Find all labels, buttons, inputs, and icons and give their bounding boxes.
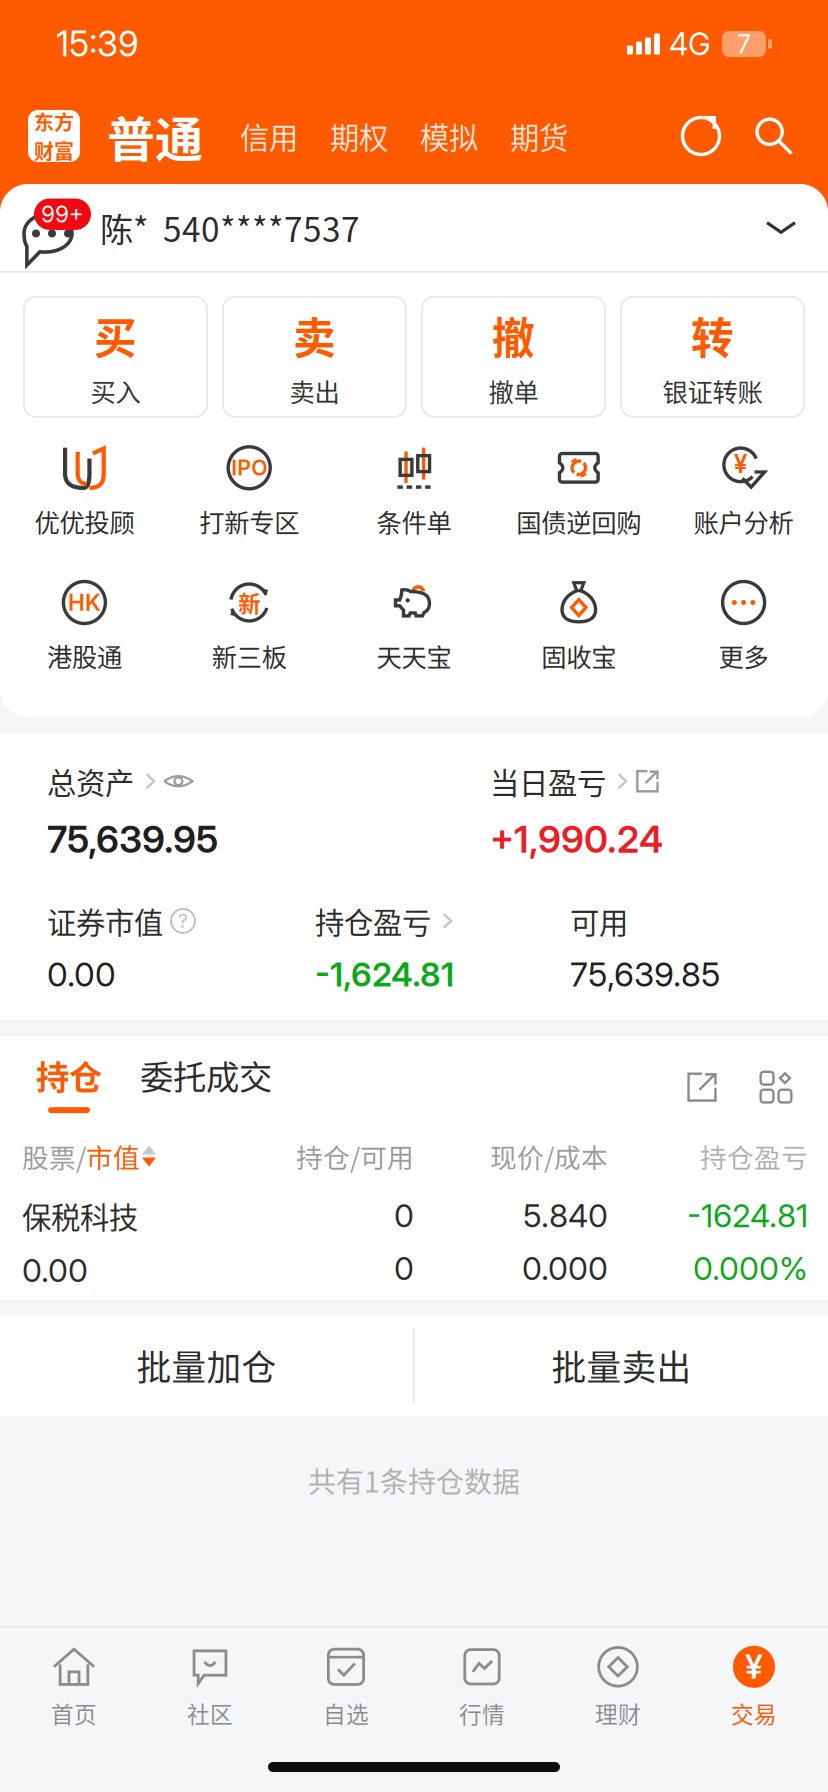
button[interactable]: HK [2, 581, 167, 674]
staticText: 0.00 [47, 954, 116, 994]
staticText: 15:39 [56, 23, 139, 65]
staticText: 共有1条持仓数据 [308, 1460, 520, 1500]
staticText: 转 [691, 305, 734, 366]
staticText: 交易 [731, 1697, 777, 1730]
staticText: 5.840 [523, 1196, 608, 1235]
staticText: 持仓 [36, 1051, 102, 1099]
button[interactable]: 条件单 [332, 447, 496, 539]
button[interactable]: 卖 [223, 297, 406, 417]
staticText: 75,639.95 [47, 816, 218, 862]
button[interactable]: 批量加仓 [0, 1315, 413, 1416]
staticText: 优优投顾 [34, 503, 134, 539]
staticText: 普通 [107, 101, 203, 171]
button[interactable]: 撤 [422, 297, 605, 417]
staticText: 财富 [34, 136, 74, 165]
button[interactable]: ¥ [661, 447, 826, 539]
staticText: 批量卖出 [551, 1340, 691, 1391]
staticText: 港股通 [47, 637, 122, 674]
staticText: IPO [231, 455, 267, 481]
staticText: 撤单 [488, 372, 538, 409]
button[interactable]: 模拟 [404, 106, 494, 166]
staticText: 天天宝 [376, 637, 451, 674]
staticText: 持仓盈亏 [700, 1137, 808, 1175]
button[interactable]: 首页 [6, 1646, 142, 1730]
staticText: 持仓盈亏 [315, 900, 431, 942]
staticText: 撤 [492, 305, 535, 366]
staticText: 国债逆回购 [516, 503, 641, 539]
staticText: 可用 [570, 900, 628, 942]
staticText: 陈* 540****7537 [100, 203, 360, 252]
staticText: 信用 [240, 115, 298, 157]
button[interactable]: 国债逆回购 [496, 447, 661, 539]
button[interactable]: ¥ [686, 1646, 822, 1730]
staticText: 打新专区 [199, 503, 299, 539]
button[interactable]: 新 [167, 581, 332, 674]
staticText: 首页 [51, 1697, 97, 1730]
button[interactable]: 社区 [142, 1646, 278, 1730]
staticText: 社区 [187, 1697, 233, 1730]
staticText: 0 [394, 1249, 414, 1288]
staticText: 75,639.85 [570, 954, 720, 994]
staticText: 当日盈亏 [490, 760, 606, 802]
button[interactable]: 委托成交 [102, 1051, 272, 1113]
button[interactable]: Search [722, 115, 794, 157]
button[interactable]: 99+ [0, 184, 828, 271]
staticText: 新 [238, 586, 260, 619]
staticText: 0.000 [522, 1249, 608, 1288]
button[interactable]: 转 [621, 297, 804, 417]
staticText: 买 [94, 305, 137, 366]
button[interactable]: 更多 [661, 581, 826, 674]
button[interactable]: 保税科技 [0, 1184, 828, 1300]
staticText: 条件单 [376, 503, 451, 539]
button[interactable]: 自选 [278, 1646, 414, 1730]
button[interactable]: Layout [718, 1071, 792, 1113]
staticText: ¥ [745, 1647, 763, 1686]
staticText: 持仓/可用 [296, 1137, 414, 1175]
staticText: 保税科技 [22, 1194, 138, 1237]
button[interactable]: 批量卖出 [415, 1315, 828, 1416]
button[interactable]: 行情 [414, 1646, 550, 1730]
staticText: ¥ [734, 449, 748, 479]
button[interactable]: IPO [167, 447, 332, 539]
button[interactable]: 优优投顾 [2, 447, 167, 539]
staticText: 卖 [293, 305, 336, 366]
staticText: 4G [669, 25, 711, 62]
staticText: 固收宝 [541, 637, 616, 674]
staticText: 市值 [86, 1137, 140, 1175]
staticText: 99+ [41, 200, 84, 228]
staticText: 证券市值 [47, 900, 163, 942]
staticText: HK [68, 589, 101, 616]
staticText: 现价/成本 [490, 1137, 608, 1175]
staticText: 0.00 [22, 1251, 88, 1290]
button[interactable]: 理财 [550, 1646, 686, 1730]
staticText: -1624.81 [687, 1196, 808, 1235]
staticText: ? [178, 909, 188, 932]
staticText: 理财 [595, 1697, 641, 1730]
button[interactable]: Export [686, 1071, 718, 1113]
staticText: 银证转账 [662, 372, 762, 409]
staticText: 委托成交 [140, 1051, 272, 1099]
button[interactable]: 期货 [494, 106, 584, 166]
button[interactable]: 持仓 [36, 1051, 102, 1113]
staticText: 更多 [719, 637, 769, 674]
staticText: 自选 [323, 1697, 369, 1730]
staticText: 7 [737, 29, 751, 59]
staticText: 卖出 [289, 372, 339, 409]
staticText: 期权 [330, 115, 388, 157]
staticText: -1,624.81 [315, 954, 454, 994]
button[interactable]: Refresh [680, 115, 722, 157]
staticText: 期货 [510, 115, 568, 157]
staticText: 买入 [90, 372, 140, 409]
staticText: 东方 [34, 107, 74, 136]
button[interactable]: 期权 [314, 106, 404, 166]
button[interactable]: 固收宝 [496, 581, 661, 674]
button[interactable]: 信用 [224, 106, 314, 166]
staticText: 行情 [459, 1697, 505, 1730]
staticText: +1,990.24 [490, 816, 663, 862]
button[interactable]: 买 [24, 297, 207, 417]
staticText: 0 [394, 1196, 414, 1235]
staticText: 股票/ [22, 1137, 86, 1175]
button[interactable]: 天天宝 [332, 581, 496, 674]
staticText: 总资产 [47, 760, 134, 802]
staticText: 批量加仓 [137, 1340, 277, 1391]
